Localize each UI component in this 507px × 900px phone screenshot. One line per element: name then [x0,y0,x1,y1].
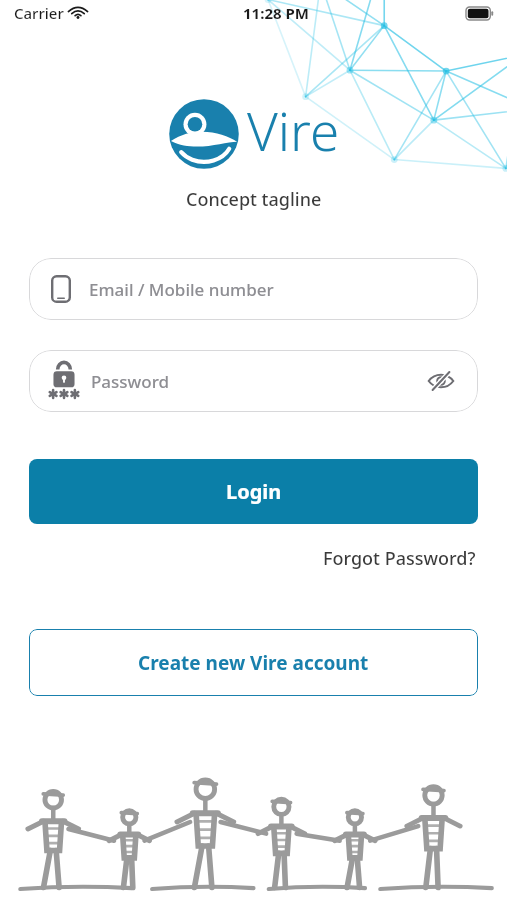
staticText: Create new Vire account [138,650,369,676]
button[interactable]: Create new Vire account [29,629,478,696]
button[interactable]: Login [29,459,478,524]
staticText: Email / Mobile number [89,278,274,301]
staticText: Password [91,370,170,393]
button[interactable]: Forgot Password? [315,540,484,577]
staticText: 11:28 PM [243,3,309,23]
staticText: Forgot Password? [323,546,476,571]
staticText: Vire [247,94,340,166]
button[interactable]: Password [29,350,478,412]
staticText: Login [226,478,282,505]
button[interactable]: Email / Mobile number [29,258,478,320]
staticText: Concept tagline [186,187,322,212]
button[interactable]: Show password [424,364,458,398]
staticText: Carrier [14,3,64,23]
